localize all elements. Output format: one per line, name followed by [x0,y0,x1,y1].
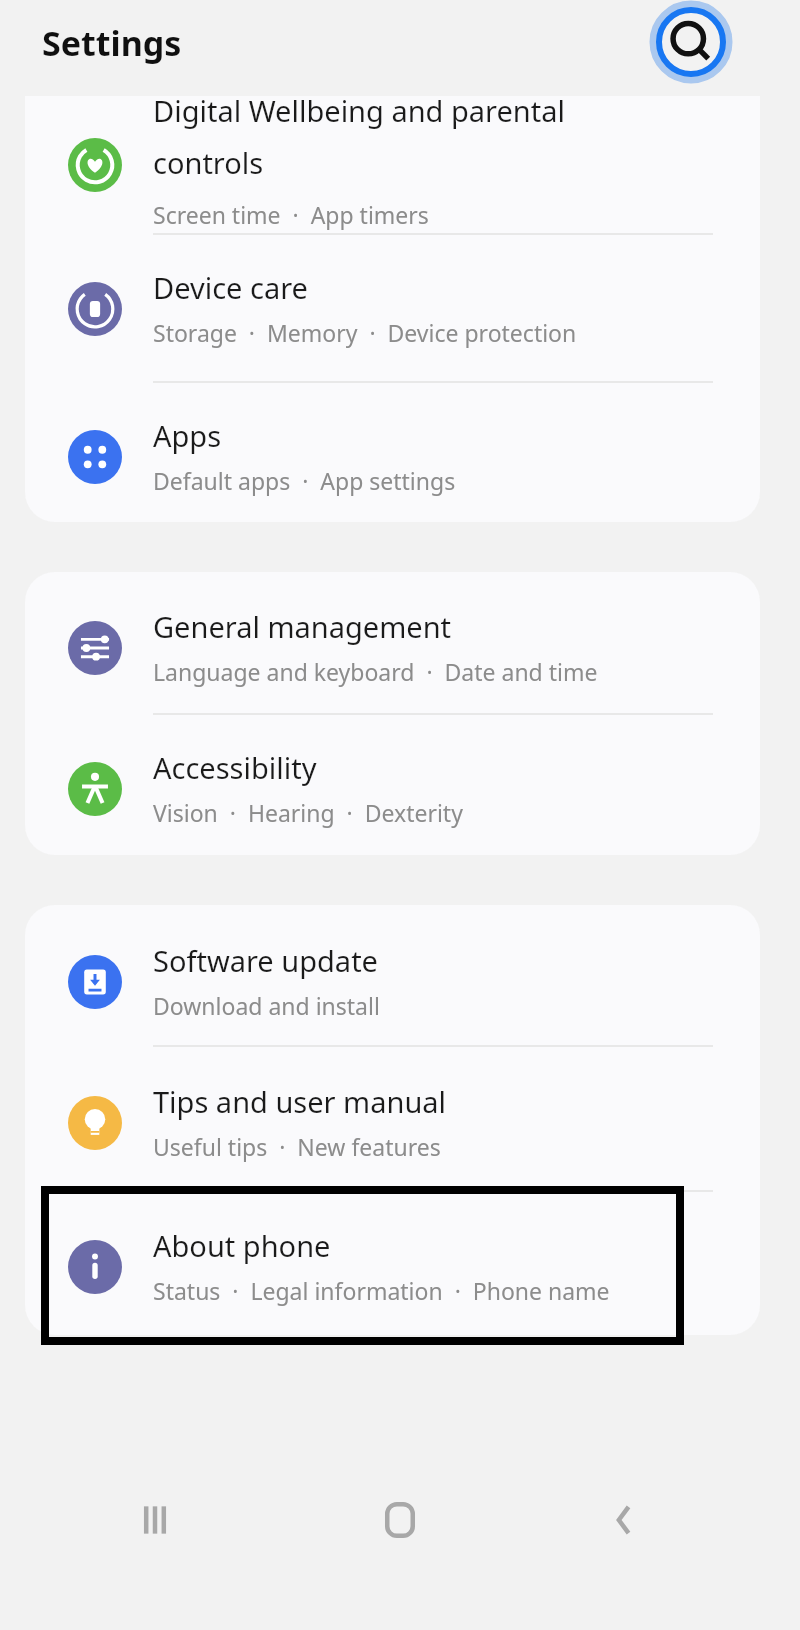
button[interactable]: Search [653,4,729,80]
button[interactable]: Back [565,1460,685,1580]
button[interactable]: Software update [25,917,760,1047]
staticText: Tips and user manual [153,1082,447,1121]
staticText: Default apps · App settings [153,465,456,496]
staticText: Software update [153,941,378,980]
staticText: General management [153,607,452,646]
staticText: Storage · Memory · Device protection [153,317,577,348]
staticText: Accessibility [153,748,317,787]
staticText: Digital Wellbeing and parental controls [153,96,565,182]
staticText: Settings [42,20,182,66]
staticText: Status · Legal information · Phone name [153,1275,610,1306]
staticText: Useful tips · New features [153,1131,441,1162]
button[interactable]: About phone [25,1202,760,1332]
button[interactable]: Tips and user manual [25,1058,760,1188]
button[interactable]: Apps [25,392,760,522]
button[interactable]: General management [25,583,760,713]
staticText: Download and install [153,990,380,1021]
staticText: Vision · Hearing · Dexterity [153,797,463,828]
button[interactable]: Digital Wellbeing and parental controls [25,96,760,236]
staticText: Screen time · App timers [153,199,429,230]
button[interactable]: Recents [95,1460,215,1580]
button[interactable]: Home [340,1460,460,1580]
staticText: Language and keyboard · Date and time [153,656,598,687]
button[interactable]: Accessibility [25,724,760,854]
staticText: Device care [153,268,308,307]
staticText: About phone [153,1226,331,1265]
staticText: Apps [153,416,222,455]
button[interactable]: Device care [25,244,760,374]
